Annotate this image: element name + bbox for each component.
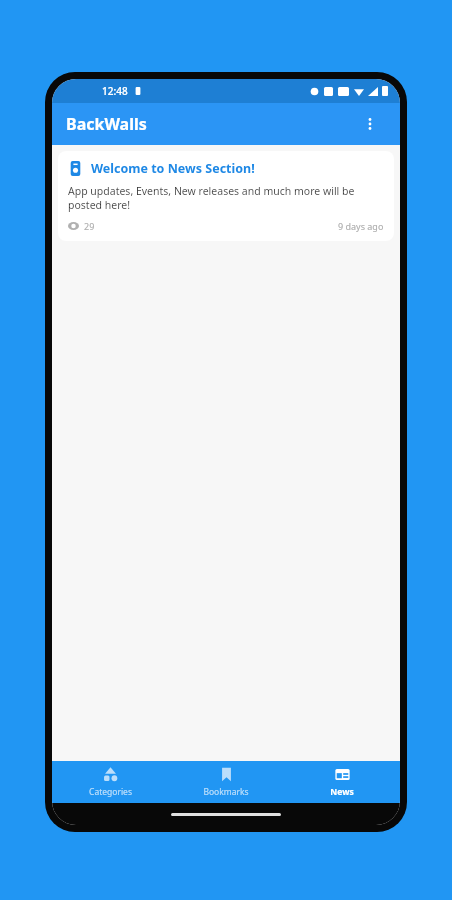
button[interactable]: Welcome to News Section! — [58, 151, 394, 241]
staticText: Welcome to News Section! — [91, 160, 255, 177]
button[interactable]: Bookmarks — [168, 761, 284, 803]
staticText: 12:48 — [102, 84, 128, 98]
staticText: BackWalls — [66, 113, 147, 135]
staticText: 9 days ago — [338, 220, 384, 232]
button[interactable]: News — [284, 761, 400, 803]
staticText: App updates, Events, New releases and mu… — [68, 184, 384, 212]
staticText: 29 — [84, 220, 95, 232]
staticText: Bookmarks — [203, 786, 249, 798]
staticText: News — [330, 786, 354, 798]
button[interactable]: More options — [354, 108, 386, 140]
staticText: Categories — [89, 786, 132, 798]
button[interactable]: Categories — [52, 761, 168, 803]
